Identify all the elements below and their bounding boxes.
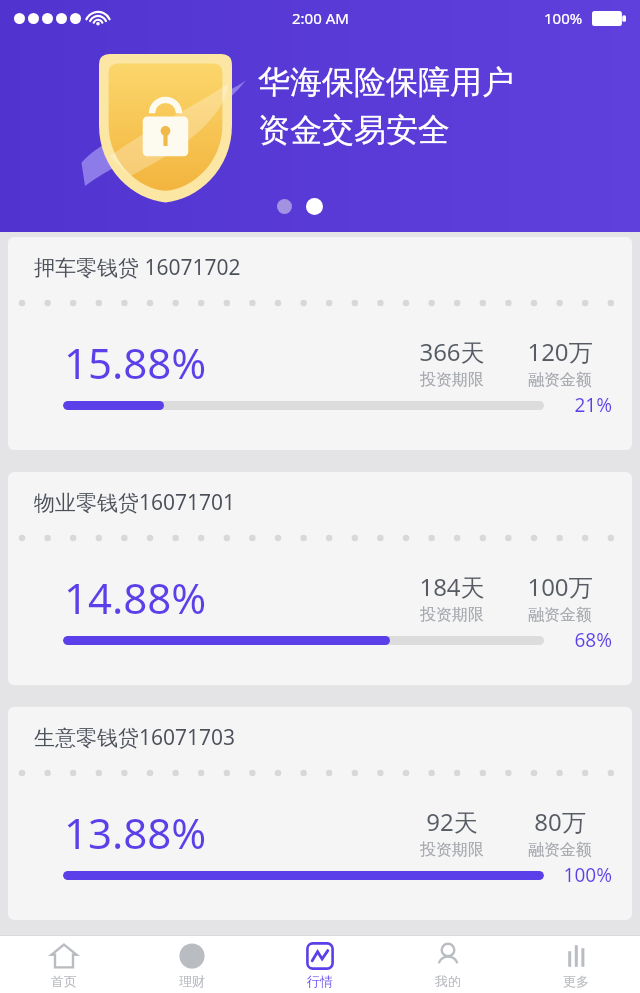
staticText: 15.88% [64,334,207,391]
button[interactable]: Market [256,936,384,993]
staticText: 2:00 AM [292,8,349,28]
staticText: 21% [574,392,612,418]
staticText: 100% [563,862,612,888]
staticText: 首页 [51,973,77,989]
staticText: 120万 [527,335,593,368]
button[interactable]: More [512,936,640,993]
staticText: 100% [544,8,583,28]
staticText: 92天 [426,805,478,838]
staticText: 理财 [179,973,205,989]
staticText: 184天 [419,570,485,603]
staticText: 366天 [419,335,485,368]
button[interactable]: Profile [384,936,512,993]
staticText: 80万 [534,805,586,838]
staticText: 融资金额 [528,840,592,860]
staticText: 融资金额 [528,605,592,625]
staticText: 行情 [307,973,333,989]
staticText: 68% [574,627,612,653]
staticText: 物业零钱贷16071701 [34,488,236,517]
button[interactable]: 押车零钱贷 16071702 [8,237,632,450]
staticText: 生意零钱贷16071703 [34,723,236,752]
button[interactable]: 生意零钱贷16071703 [8,707,632,920]
staticText: 投资期限 [420,370,484,390]
button[interactable]: Home [0,936,128,993]
staticText: 投资期限 [420,605,484,625]
staticText: 14.88% [64,569,207,626]
staticText: 我的 [435,973,461,989]
staticText: 投资期限 [420,840,484,860]
staticText: 押车零钱贷 16071702 [34,253,241,282]
button[interactable]: Finance [128,936,256,993]
staticText: 100万 [527,570,593,603]
staticText: 更多 [563,973,589,989]
staticText: 华海保险保障用户 [258,62,514,102]
button[interactable]: 物业零钱贷16071701 [8,472,632,685]
staticText: 融资金额 [528,370,592,390]
staticText: 13.88% [64,804,207,861]
staticText: 资金交易安全 [258,110,450,150]
